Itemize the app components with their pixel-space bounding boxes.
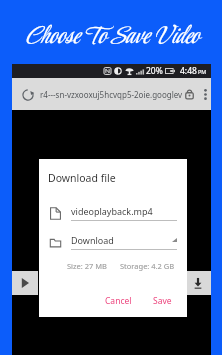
button[interactable]: Download — [185, 271, 211, 295]
staticText: Download — [71, 234, 114, 246]
button[interactable]: Play — [12, 271, 38, 295]
staticText: Choose To Save Video — [24, 19, 198, 55]
staticText: r4---sn-vzxooxuj5hcvqp5-2oie.googlev — [40, 89, 183, 100]
button[interactable]: Site information — [183, 88, 196, 101]
button[interactable]: Choose folder — [49, 234, 177, 250]
staticText: Size: 27 MB — [67, 261, 107, 271]
staticText: Storage: 4.2 GB — [120, 261, 175, 271]
staticText: videoplayback.mp4 — [71, 205, 153, 217]
button[interactable]: Cancel — [101, 292, 136, 310]
button[interactable]: Save — [149, 292, 176, 310]
button[interactable]: Reload — [21, 88, 34, 101]
staticText: Save — [153, 295, 172, 307]
staticText: PM — [198, 68, 207, 75]
staticText: 4:48 — [180, 65, 197, 77]
staticText: 20% — [146, 65, 163, 77]
staticText: Download file — [48, 171, 116, 185]
staticText: Cancel — [105, 295, 132, 307]
button[interactable]: More options — [200, 87, 211, 101]
